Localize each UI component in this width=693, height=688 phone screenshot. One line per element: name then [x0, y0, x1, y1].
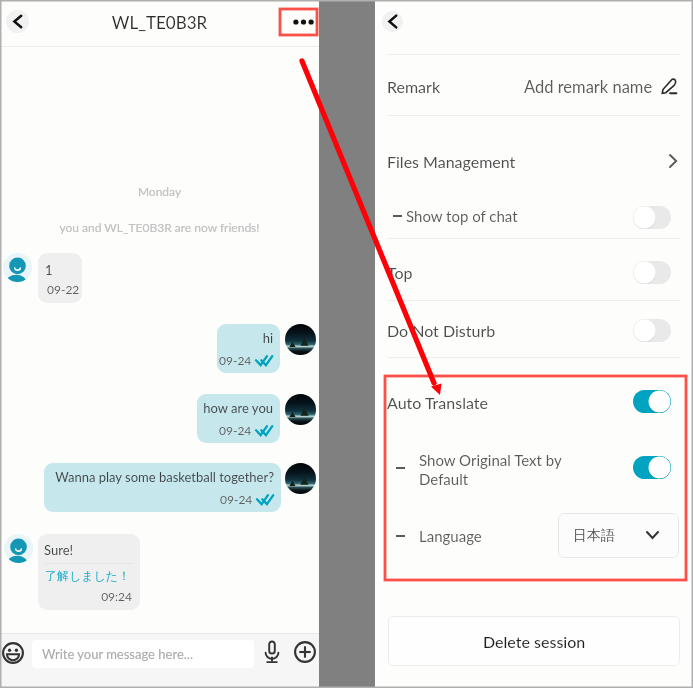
button[interactable]: Delete session [388, 616, 680, 666]
button[interactable]: Switch on [633, 390, 671, 413]
button[interactable]: Do Not Disturb [387, 317, 496, 343]
staticText: Wanna play some basketball together? [48, 469, 274, 485]
button[interactable]: Remark [387, 73, 441, 99]
button[interactable]: Show Original Text by Default [419, 451, 579, 488]
staticText: Add remark name [524, 77, 653, 97]
staticText: Remark [387, 77, 441, 96]
button[interactable]: hi [217, 324, 280, 373]
button[interactable]: 1 [38, 253, 82, 303]
staticText: Do Not Disturb [387, 321, 496, 340]
button[interactable]: Switch off [633, 261, 671, 284]
staticText: Auto Translate [387, 393, 488, 412]
button[interactable]: Write your message here... [32, 640, 254, 668]
button[interactable]: Open Files Management [663, 151, 683, 171]
staticText: Monday [0, 184, 319, 198]
staticText: 09-24 [219, 423, 252, 437]
staticText: 09:24 [38, 589, 132, 603]
button[interactable]: Auto Translate [387, 389, 488, 415]
staticText: 日本語 [573, 527, 615, 545]
staticText: WL_TE0B3R [0, 12, 319, 32]
button[interactable]: Edit remark name [661, 78, 677, 94]
staticText: 09-24 [220, 492, 253, 506]
staticText: Top [387, 263, 413, 282]
button[interactable]: 日本語 [558, 513, 679, 558]
button[interactable]: Back [382, 11, 403, 32]
staticText: Show top of chat [406, 207, 518, 225]
staticText: hi [221, 330, 273, 346]
staticText: Write your message here... [42, 646, 193, 662]
staticText: Show Original Text by Default [419, 451, 579, 488]
staticText: 1 [45, 262, 53, 278]
staticText: Sure! [44, 542, 73, 558]
button[interactable]: Wanna play some basketball together? [44, 463, 281, 512]
staticText: you and WL_TE0B3R are now friends! [0, 220, 319, 234]
button[interactable]: Switch off [633, 319, 671, 342]
button[interactable]: Voice message [262, 640, 282, 664]
staticText: Language [419, 527, 482, 545]
button[interactable]: Sure! [38, 534, 140, 610]
staticText: Delete session [483, 632, 586, 651]
button[interactable]: Show top of chat [393, 204, 518, 228]
button[interactable]: Top [387, 259, 413, 285]
staticText: how are you [201, 400, 273, 416]
staticText: 09-24 [219, 353, 252, 367]
staticText: 了解しました！ [45, 568, 131, 583]
button[interactable]: how are you [197, 394, 280, 443]
staticText: Files Management [387, 152, 516, 171]
button[interactable]: Switch off [633, 206, 671, 229]
button[interactable]: Back [6, 10, 29, 33]
staticText: 09-22 [47, 282, 80, 296]
button[interactable]: Add attachment [294, 641, 316, 663]
button[interactable]: More options [285, 9, 322, 35]
button[interactable]: Files Management [387, 148, 516, 174]
button[interactable]: Switch on [633, 456, 671, 479]
button[interactable]: Emoji [2, 642, 24, 664]
